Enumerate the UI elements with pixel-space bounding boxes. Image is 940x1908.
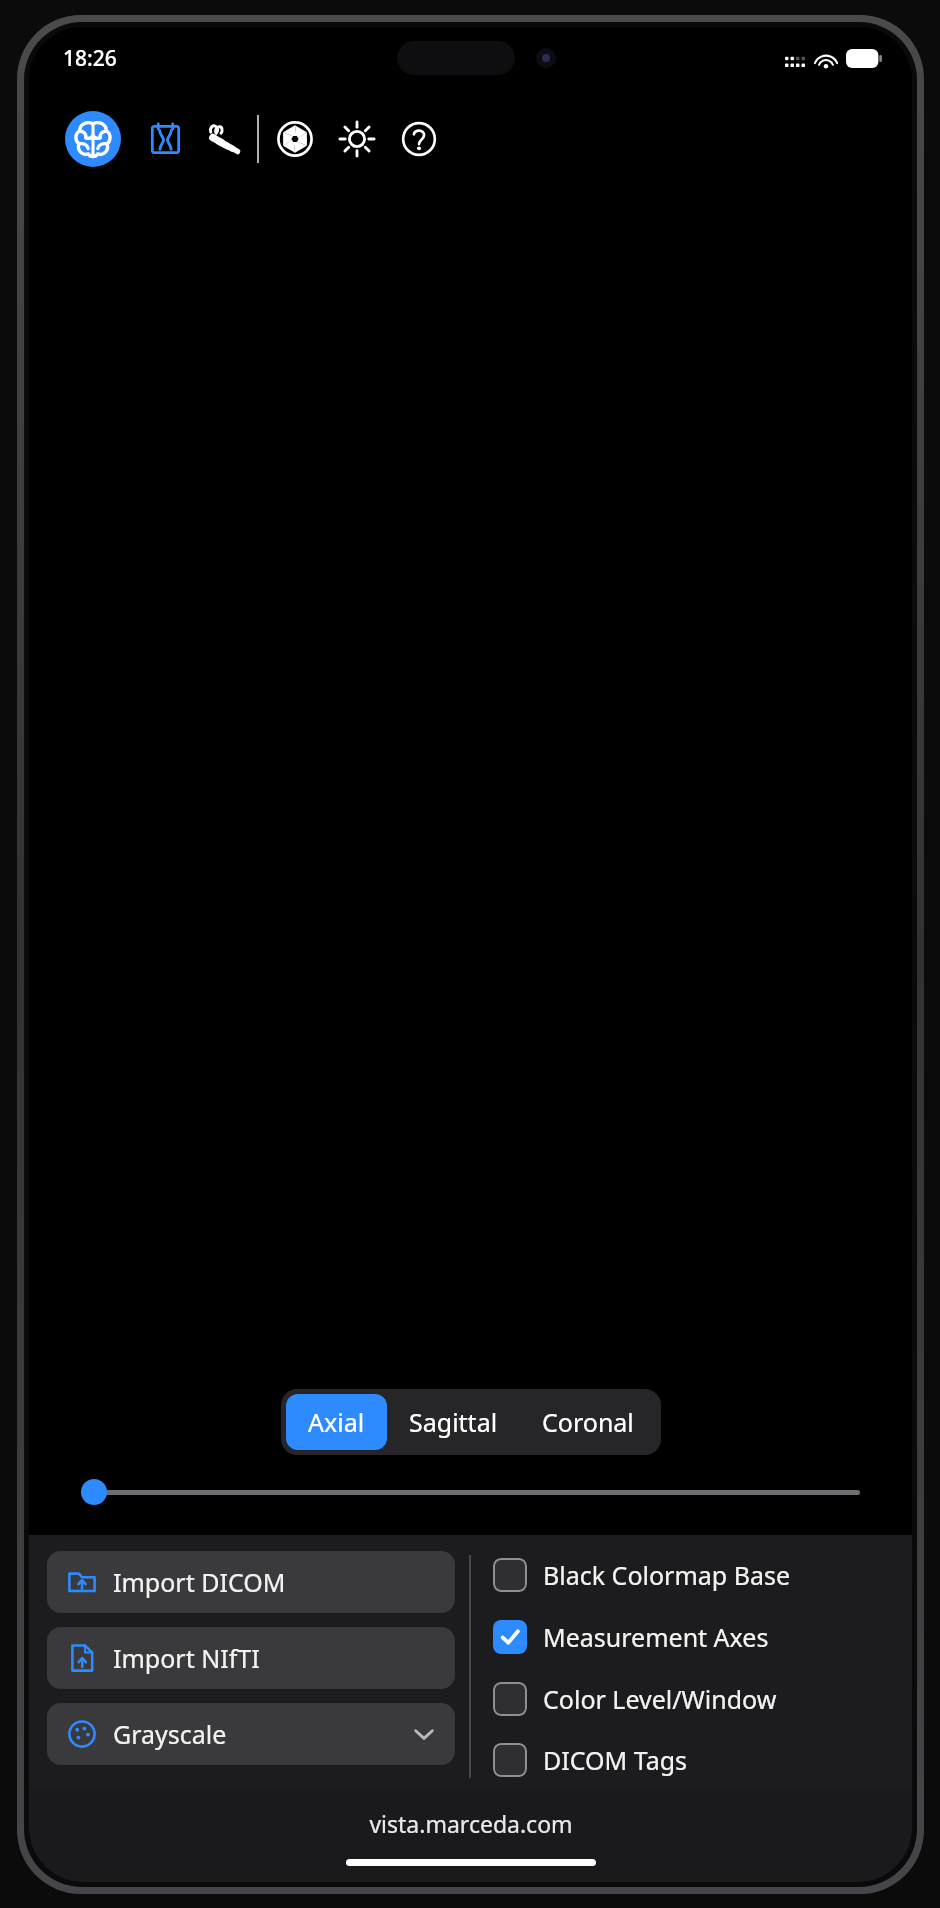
staticText: Color Level/Window — [543, 1682, 777, 1716]
button[interactable]: Black Colormap Base — [493, 1551, 902, 1599]
button[interactable]: Import DICOM — [47, 1551, 455, 1613]
button[interactable]: Slice slider — [81, 1479, 860, 1505]
staticText: Black Colormap Base — [543, 1558, 791, 1592]
staticText: Axial — [308, 1405, 365, 1439]
button[interactable]: Import NIfTI — [47, 1627, 455, 1689]
staticText: Import NIfTI — [113, 1641, 260, 1675]
staticText: Import DICOM — [113, 1565, 286, 1599]
button[interactable]: X-ray view — [143, 117, 187, 161]
button[interactable]: Color Level/Window — [493, 1675, 902, 1723]
button[interactable]: Bone view — [201, 117, 245, 161]
staticText: Sagittal — [409, 1405, 498, 1439]
staticText: Coronal — [542, 1405, 634, 1439]
button[interactable]: Coronal — [520, 1394, 656, 1450]
button[interactable]: Axial — [286, 1394, 387, 1450]
button[interactable]: Grayscale — [47, 1703, 455, 1765]
button[interactable]: Contrast aperture — [273, 117, 317, 161]
staticText: 18:26 — [63, 44, 117, 73]
button[interactable]: Vista brain logo — [65, 111, 121, 167]
button[interactable]: Measurement Axes — [493, 1613, 902, 1661]
staticText: vista.marceda.com — [369, 1808, 573, 1839]
staticText: DICOM Tags — [543, 1743, 688, 1777]
button[interactable]: Sagittal — [387, 1394, 520, 1450]
button[interactable]: Help — [397, 117, 441, 161]
staticText: Grayscale — [113, 1717, 227, 1751]
button[interactable]: Brightness — [335, 117, 379, 161]
staticText: Measurement Axes — [543, 1620, 769, 1654]
button[interactable]: DICOM Tags — [493, 1737, 902, 1782]
